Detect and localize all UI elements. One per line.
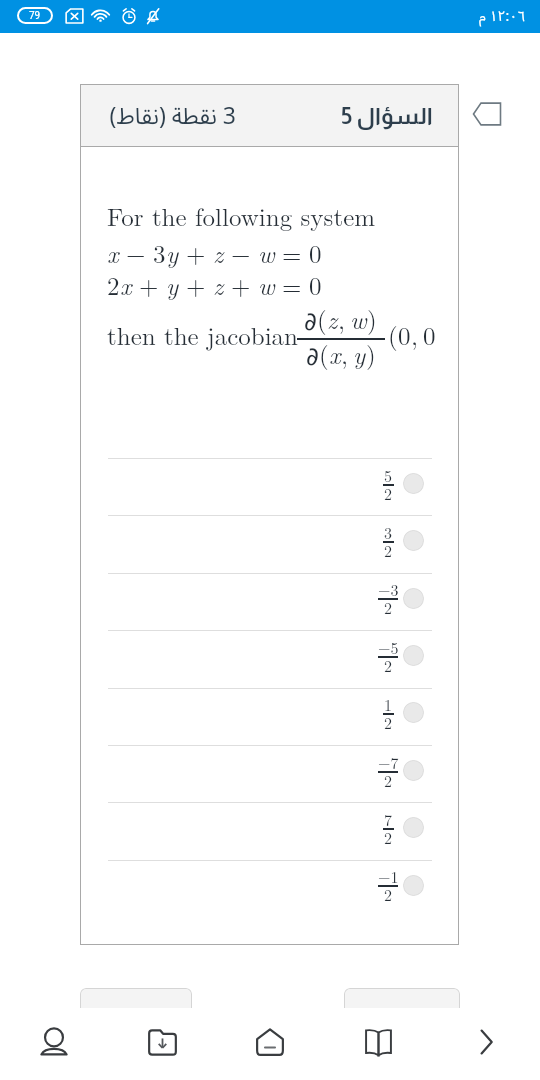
staticText: w	[258, 267, 275, 302]
staticText: +	[139, 267, 159, 302]
button[interactable]: Previous page	[80, 988, 192, 1018]
staticText: +	[186, 235, 206, 270]
staticText: (	[388, 317, 398, 352]
staticText: 3 نقطة (نقاط)	[109, 92, 236, 141]
button[interactable]: Home	[216, 1008, 324, 1076]
staticText: 2	[384, 482, 393, 505]
staticText: 0	[309, 235, 322, 270]
staticText: then the jacobian	[107, 317, 299, 352]
staticText: 3	[384, 521, 393, 544]
staticText: z	[213, 267, 224, 302]
button[interactable]	[108, 746, 432, 803]
button[interactable]: Flag question	[472, 101, 502, 127]
staticText: ١٢:٠٦ م	[479, 2, 526, 32]
staticText: x	[120, 267, 132, 302]
staticText: x	[107, 235, 119, 270]
staticText: )	[367, 301, 377, 336]
staticText: 2	[384, 539, 393, 562]
staticText: =	[282, 267, 302, 302]
button[interactable]: Bookmarks	[324, 1008, 432, 1076]
staticText: 7	[384, 808, 393, 831]
staticText: x	[329, 336, 341, 371]
staticText: For the following system	[107, 198, 376, 233]
staticText: y	[166, 235, 179, 270]
staticText: 2	[384, 769, 393, 792]
staticText: 3	[153, 235, 166, 270]
staticText: +	[186, 267, 206, 302]
staticText: ∂	[306, 342, 319, 371]
staticText: 5	[384, 464, 393, 487]
staticText: −	[126, 235, 146, 270]
staticText: ,	[411, 317, 418, 352]
button[interactable]	[108, 803, 432, 860]
staticText: =	[282, 235, 302, 270]
staticText: −3	[378, 578, 399, 601]
button[interactable]	[108, 631, 432, 688]
staticText: )	[366, 336, 376, 371]
staticText: −5	[378, 636, 399, 659]
staticText: z	[327, 301, 338, 336]
button[interactable]	[108, 459, 432, 516]
button[interactable]	[108, 861, 432, 918]
staticText: 0	[309, 267, 322, 302]
staticText: (	[317, 301, 327, 336]
staticText: −1	[378, 865, 399, 888]
button[interactable]: Account	[0, 1008, 108, 1076]
staticText: ∂	[304, 307, 317, 336]
staticText: ,	[338, 301, 345, 336]
staticText: 2	[384, 711, 393, 734]
button[interactable]: Forward	[432, 1008, 540, 1076]
staticText: −	[231, 235, 251, 270]
staticText: 1	[384, 693, 393, 716]
button[interactable]: Next page	[344, 988, 460, 1018]
staticText: 2	[384, 596, 393, 619]
button[interactable]: Downloads	[108, 1008, 216, 1076]
staticText: 2	[384, 654, 393, 677]
staticText: w	[258, 235, 275, 270]
button[interactable]	[108, 574, 432, 631]
staticText: 2	[107, 267, 120, 302]
staticText: 2	[384, 826, 393, 849]
staticText: ,	[341, 336, 348, 371]
button[interactable]	[108, 516, 432, 573]
staticText: +	[231, 267, 251, 302]
button[interactable]	[108, 689, 432, 746]
staticText: z	[213, 235, 224, 270]
staticText: 0	[398, 317, 411, 352]
staticText: 79	[29, 10, 41, 22]
staticText: 0	[423, 317, 436, 352]
staticText: (	[319, 336, 329, 371]
staticText: y	[166, 267, 179, 302]
staticText: y	[353, 336, 366, 371]
staticText: w	[350, 301, 367, 336]
staticText: السؤال 5	[342, 103, 433, 129]
staticText: 2	[384, 883, 393, 906]
staticText: −7	[378, 751, 399, 774]
